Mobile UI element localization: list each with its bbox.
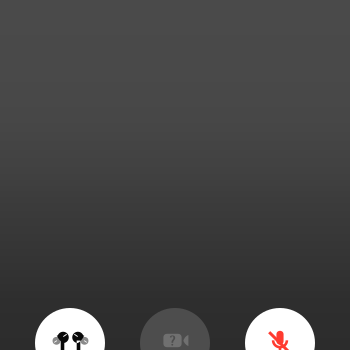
button[interactable]: Audio output (35, 308, 105, 350)
button[interactable]: Unmute (245, 308, 315, 350)
button[interactable]: Turn camera on (140, 308, 210, 350)
